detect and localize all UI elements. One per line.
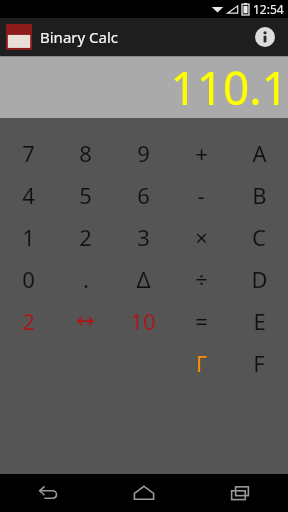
button[interactable]: 7 — [0, 132, 57, 174]
staticText: 0 — [22, 264, 35, 294]
button[interactable]: E — [230, 300, 288, 342]
button[interactable]: 8 — [57, 132, 114, 174]
staticText: = — [195, 306, 208, 336]
button[interactable]: + — [172, 132, 230, 174]
staticText: E — [253, 306, 266, 336]
button[interactable]: A — [230, 132, 288, 174]
staticText: 2 — [79, 222, 92, 252]
staticText: 2 — [22, 306, 35, 336]
button[interactable]: 4 — [0, 174, 57, 216]
staticText: Γ — [196, 348, 207, 378]
staticText: 110.1 — [0, 56, 288, 118]
staticText: F — [253, 348, 265, 378]
staticText: Δ — [136, 264, 151, 294]
button[interactable]: Info — [250, 22, 280, 52]
button[interactable]: Home — [96, 474, 192, 512]
button[interactable]: F — [230, 342, 288, 384]
staticText: × — [195, 222, 208, 252]
staticText: C — [252, 222, 266, 252]
staticText: D — [251, 264, 268, 294]
button[interactable]: 2 — [57, 216, 114, 258]
button[interactable]: Γ — [172, 342, 230, 384]
staticText: + — [195, 138, 208, 168]
staticText: A — [252, 138, 267, 168]
staticText: B — [252, 180, 267, 210]
button[interactable]: 0 — [0, 258, 57, 300]
staticText: 8 — [79, 138, 92, 168]
staticText: 4 — [22, 180, 35, 210]
button[interactable]: - — [172, 174, 230, 216]
button[interactable]: 9 — [114, 132, 172, 174]
button[interactable]: 6 — [114, 174, 172, 216]
staticText: 1 — [22, 222, 35, 252]
staticText: 7 — [22, 138, 35, 168]
button[interactable]: 1 — [0, 216, 57, 258]
staticText: Binary Calc — [40, 27, 119, 47]
button[interactable]: B — [230, 174, 288, 216]
button[interactable]: C — [230, 216, 288, 258]
button[interactable]: = — [172, 300, 230, 342]
button[interactable]: D — [230, 258, 288, 300]
staticText: . — [83, 264, 89, 294]
staticText: 12:54 — [253, 1, 284, 17]
button[interactable]: 2 — [0, 300, 57, 342]
staticText: 9 — [137, 138, 150, 168]
button[interactable]: × — [172, 216, 230, 258]
staticText: 3 — [137, 222, 150, 252]
staticText: 10 — [130, 306, 156, 336]
staticText: - — [197, 180, 205, 210]
button[interactable]: Back — [0, 474, 96, 512]
button[interactable]: 3 — [114, 216, 172, 258]
button[interactable]: Recents — [192, 474, 288, 512]
button[interactable]: ↔ — [57, 300, 114, 342]
button[interactable]: ÷ — [172, 258, 230, 300]
staticText: 5 — [79, 180, 92, 210]
button[interactable]: Δ — [114, 258, 172, 300]
staticText: ↔ — [76, 308, 95, 334]
staticText: 6 — [137, 180, 150, 210]
staticText: ÷ — [195, 264, 208, 294]
button[interactable]: 10 — [114, 300, 172, 342]
button[interactable]: 5 — [57, 174, 114, 216]
